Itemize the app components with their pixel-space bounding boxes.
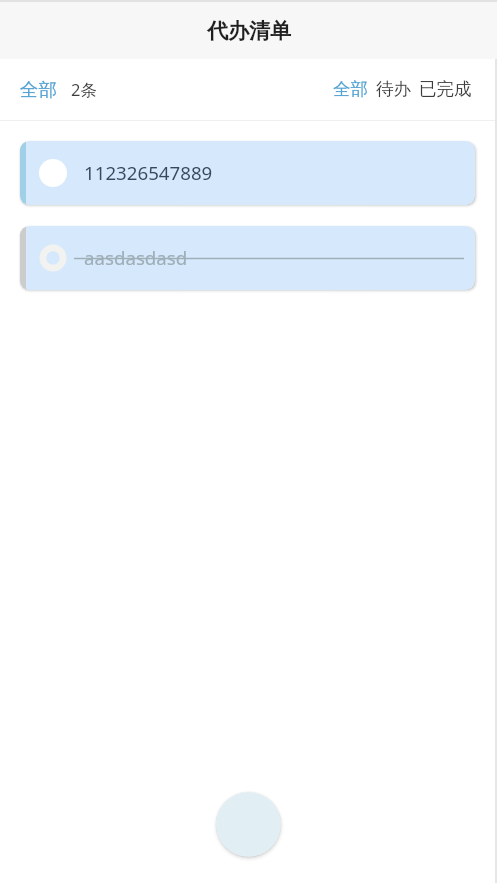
staticText: 2条 [71,78,97,101]
button[interactable]: 待办 [376,78,411,100]
button[interactable]: 全部 [20,78,97,101]
staticText: 全部 [20,78,57,101]
button[interactable]: 已完成 [419,78,472,100]
staticText: 代办清单 [207,18,291,44]
button[interactable]: 112326547889 [20,141,475,205]
staticText: aasdasdasd [84,245,188,270]
button[interactable]: Add task [216,792,281,857]
staticText: 112326547889 [84,160,213,185]
button[interactable]: aasdasdasd [20,226,475,290]
button[interactable]: 全部 [333,78,368,100]
